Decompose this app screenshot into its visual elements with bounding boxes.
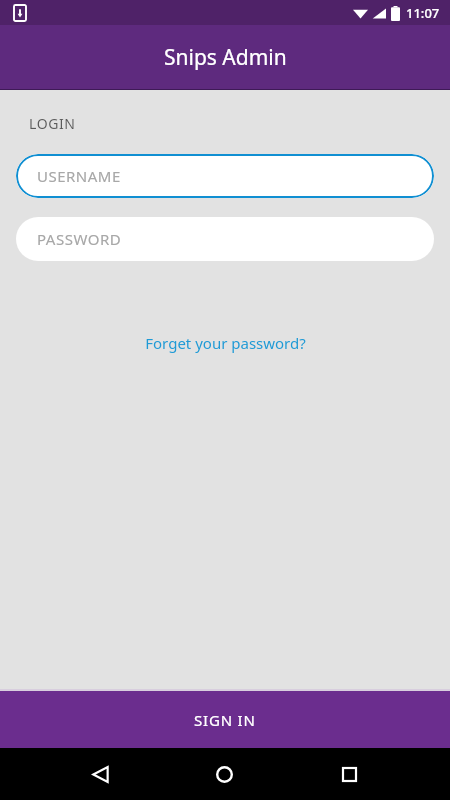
button[interactable]: Recent apps [325, 750, 373, 798]
staticText: USERNAME [37, 166, 121, 186]
staticText: Snips Admin [164, 43, 287, 72]
button[interactable]: SIGN IN [0, 691, 450, 748]
button[interactable]: Back [76, 750, 124, 798]
staticText: PASSWORD [37, 229, 122, 249]
button[interactable]: Home [200, 750, 248, 798]
staticText: 11:07 [406, 4, 440, 22]
staticText: LOGIN [29, 114, 76, 133]
button[interactable]: USERNAME [16, 154, 434, 198]
button[interactable]: PASSWORD [16, 217, 434, 261]
staticText: Forget your password? [145, 333, 306, 353]
staticText: SIGN IN [194, 710, 256, 730]
button[interactable]: Forget your password? [137, 329, 314, 357]
